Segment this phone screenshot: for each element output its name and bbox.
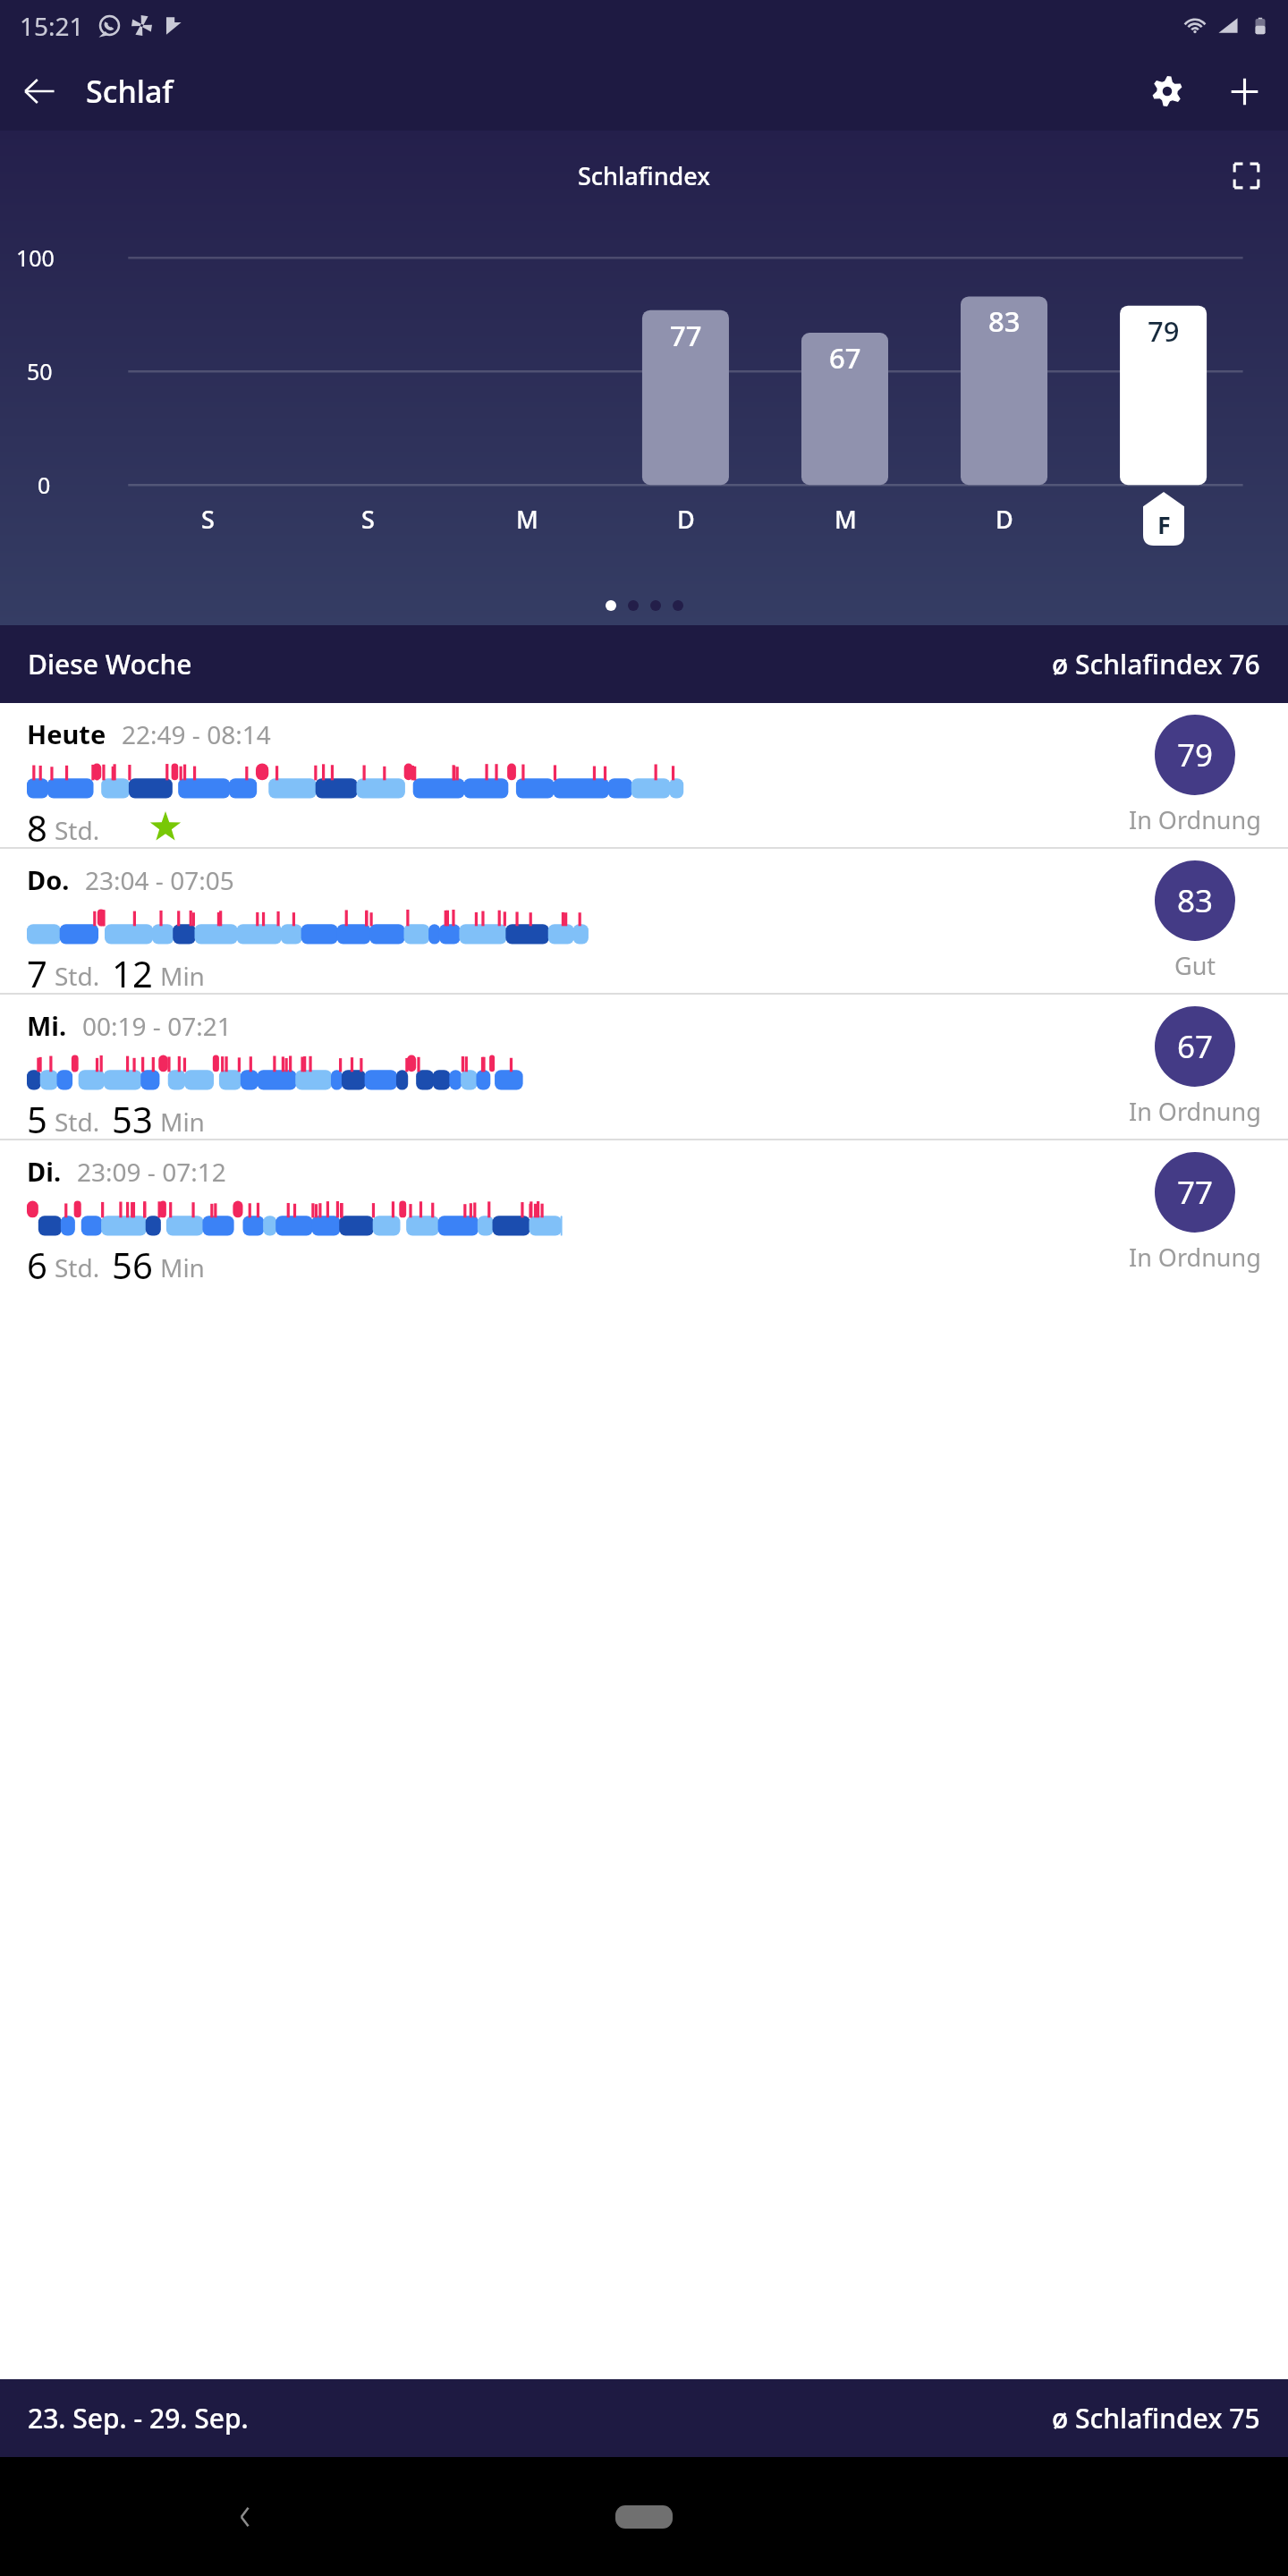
button[interactable]: F xyxy=(1143,492,1184,546)
staticText: Di. xyxy=(27,1154,62,1189)
staticText: 8 xyxy=(27,803,47,847)
staticText: S xyxy=(361,503,375,536)
staticText: 77 xyxy=(670,317,702,354)
staticText: 83 xyxy=(1177,879,1214,922)
staticText: Gut xyxy=(1174,949,1216,982)
staticText: Std. xyxy=(55,959,100,993)
button[interactable]: 23. Sep. - 29. Sep. xyxy=(0,2379,1288,2457)
button[interactable]: Einstellungen xyxy=(1138,62,1197,121)
staticText: In Ordnung xyxy=(1129,803,1261,836)
staticText: M xyxy=(835,503,857,536)
staticText: 23:04 - 07:05 xyxy=(85,863,234,897)
staticText: D xyxy=(677,503,695,536)
staticText: 23. Sep. - 29. Sep. xyxy=(28,2400,249,2436)
staticText: 15:21 xyxy=(20,9,84,43)
staticText: Schlaf xyxy=(86,71,174,112)
staticText: Heute xyxy=(27,716,106,751)
staticText: Std. xyxy=(55,1250,100,1284)
staticText: 79 xyxy=(1148,312,1180,350)
button[interactable]: Zurück xyxy=(11,63,68,120)
staticText: Std. xyxy=(55,1105,100,1139)
staticText: 67 xyxy=(829,339,861,377)
staticText: 67 xyxy=(1177,1025,1214,1068)
staticText: Diese Woche xyxy=(28,646,192,682)
staticText: ø Schlafindex 75 xyxy=(1052,2400,1260,2436)
staticText: 23:09 - 07:12 xyxy=(77,1155,226,1189)
button[interactable]: Zurück xyxy=(0,2457,489,2576)
staticText: 77 xyxy=(1177,1171,1214,1214)
button[interactable]: Hinzufügen xyxy=(1215,62,1274,121)
staticText: 00:19 - 07:21 xyxy=(82,1009,232,1043)
button[interactable]: Vollbild xyxy=(1220,149,1272,201)
staticText: 0 xyxy=(38,470,51,500)
button[interactable]: Startbildschirm xyxy=(586,2488,702,2546)
staticText: 22:49 - 08:14 xyxy=(122,717,271,751)
staticText: Min xyxy=(160,959,205,993)
staticText: S xyxy=(201,503,215,536)
button[interactable]: Di. xyxy=(0,1140,1288,1284)
button[interactable]: Diese Woche xyxy=(0,625,1288,703)
staticText: ø Schlafindex 76 xyxy=(1052,646,1260,682)
staticText: Min xyxy=(160,1105,205,1139)
button[interactable]: Do. xyxy=(0,849,1288,993)
staticText: 83 xyxy=(988,302,1021,340)
staticText: 56 xyxy=(112,1241,153,1284)
staticText: 100 xyxy=(16,242,55,273)
staticText: 12 xyxy=(112,949,153,993)
button[interactable]: Heute xyxy=(0,703,1288,847)
staticText: In Ordnung xyxy=(1129,1095,1261,1128)
staticText: D xyxy=(996,503,1013,536)
staticText: F xyxy=(1157,508,1171,541)
button[interactable]: Seite 2 xyxy=(628,600,639,611)
staticText: 5 xyxy=(27,1095,47,1139)
button[interactable]: Seite 1 xyxy=(606,600,616,611)
staticText: Min xyxy=(160,1250,205,1284)
staticText: Std. xyxy=(55,813,100,847)
button[interactable]: Mi. xyxy=(0,995,1288,1139)
staticText: 53 xyxy=(112,1095,153,1139)
staticText: Do. xyxy=(27,862,70,897)
staticText: 79 xyxy=(1177,733,1214,776)
staticText: Schlafindex xyxy=(578,159,710,192)
staticText: 7 xyxy=(27,949,47,993)
staticText: M xyxy=(516,503,538,536)
staticText: 6 xyxy=(27,1241,47,1284)
staticText: 50 xyxy=(27,356,53,386)
button[interactable]: Seite 3 xyxy=(650,600,661,611)
staticText: Mi. xyxy=(27,1008,67,1043)
button[interactable]: Seite 4 xyxy=(673,600,683,611)
staticText: In Ordnung xyxy=(1129,1241,1261,1274)
